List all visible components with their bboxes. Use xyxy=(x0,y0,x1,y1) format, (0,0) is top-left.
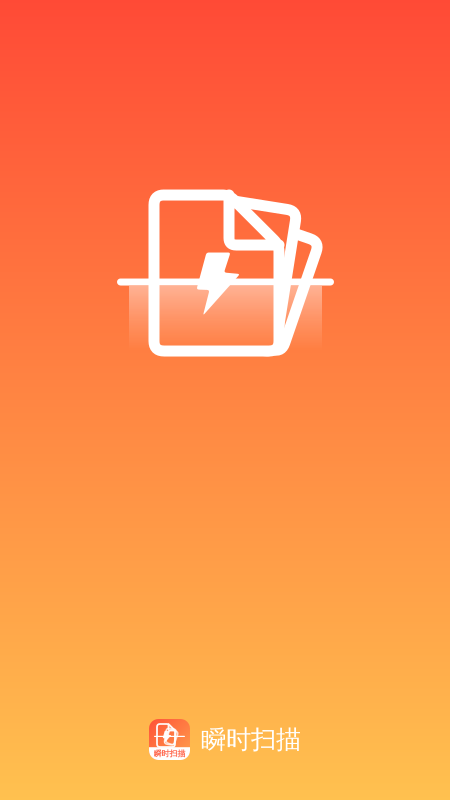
staticText: 瞬时扫描 xyxy=(201,724,301,755)
staticText: 瞬时扫描 xyxy=(153,749,185,759)
